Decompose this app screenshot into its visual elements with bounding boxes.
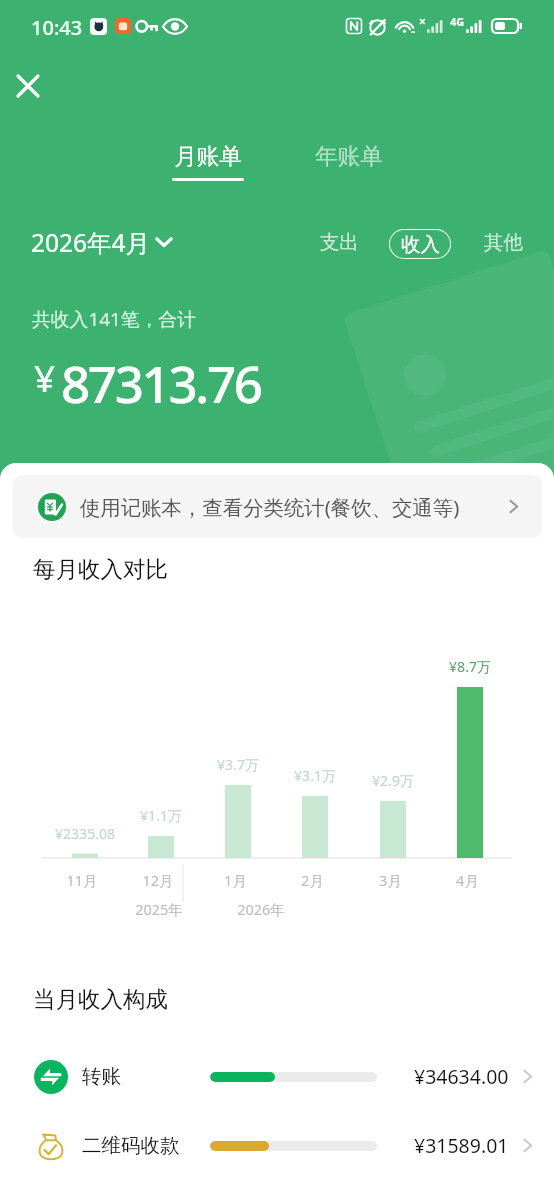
staticText: 二维码收款 <box>82 1133 180 1158</box>
staticText: 2026年 <box>237 899 285 919</box>
button[interactable]: 使用记账本，查看分类统计(餐饮、交通等) <box>13 475 542 538</box>
button[interactable]: 收入 <box>389 229 451 259</box>
staticText: 11月 <box>66 870 98 890</box>
staticText: ¥31589.01 <box>414 1132 509 1159</box>
staticText: 月账单 <box>174 142 242 170</box>
staticText: 共收入141笔，合计 <box>32 306 196 332</box>
staticText: ¥2335.08 <box>55 824 115 843</box>
button[interactable]: 2026年4月 <box>31 225 173 259</box>
staticText: 4月 <box>456 870 479 890</box>
staticText: ¥ <box>34 352 56 402</box>
staticText: ¥34634.00 <box>414 1063 509 1090</box>
button[interactable]: 月账单 <box>164 138 252 186</box>
staticText: 12月 <box>142 870 174 890</box>
staticText: ¥3.7万 <box>217 755 259 774</box>
staticText: 2025年 <box>135 899 183 919</box>
staticText: ¥1.1万 <box>140 806 182 825</box>
button[interactable]: 年账单 <box>305 138 393 178</box>
staticText: 支出 <box>320 230 359 255</box>
staticText: 年账单 <box>315 142 383 170</box>
staticText: ¥8.7万 <box>449 657 491 676</box>
staticText: 转账 <box>82 1064 121 1089</box>
staticText: 收入 <box>401 232 440 257</box>
staticText: 2026年4月 <box>31 226 151 259</box>
staticText: 每月收入对比 <box>33 555 168 583</box>
button[interactable]: 其他 <box>477 225 529 259</box>
staticText: 1月 <box>224 870 247 890</box>
staticText: 3月 <box>379 870 402 890</box>
staticText: ¥3.1万 <box>294 766 336 785</box>
staticText: × <box>419 13 426 29</box>
button[interactable]: 二维码收款 <box>0 1121 554 1170</box>
button[interactable]: Close <box>4 62 52 110</box>
staticText: 其他 <box>484 230 523 255</box>
button[interactable]: 转账 <box>0 1052 554 1101</box>
staticText: 10:43 <box>31 14 83 41</box>
button[interactable]: 支出 <box>313 225 365 259</box>
staticText: 87313.76 <box>61 348 261 404</box>
staticText: 使用记账本，查看分类统计(餐饮、交通等) <box>80 493 460 521</box>
staticText: 当月收入构成 <box>33 985 168 1013</box>
staticText: 4G <box>450 14 465 29</box>
staticText: ¥2.9万 <box>372 771 414 790</box>
staticText: 2月 <box>301 870 324 890</box>
